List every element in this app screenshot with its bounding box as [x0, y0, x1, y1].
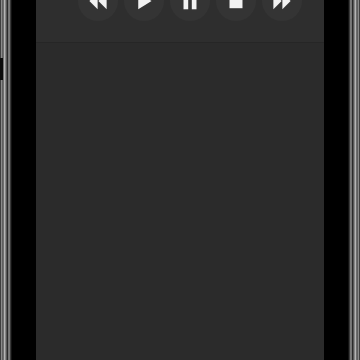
button[interactable]: Play	[124, 0, 164, 21]
button[interactable]: Rewind	[78, 0, 118, 21]
button[interactable]: Pause	[170, 0, 210, 21]
button[interactable]: Stop	[216, 0, 256, 21]
button[interactable]: Fast forward	[262, 0, 302, 21]
